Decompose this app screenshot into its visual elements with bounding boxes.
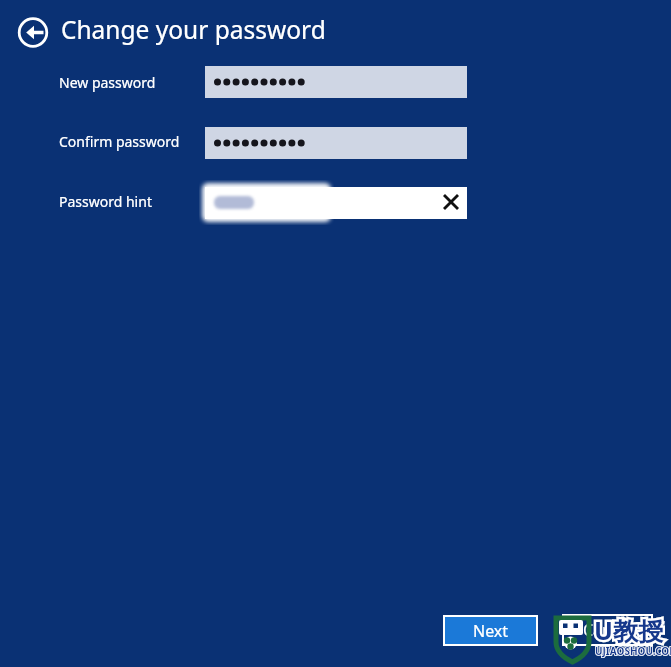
button[interactable] [205,127,467,159]
button[interactable] [205,187,467,219]
staticText: Cancel [583,619,633,641]
button[interactable]: Cancel [562,614,653,646]
button[interactable] [17,16,50,49]
staticText: Password hint [59,192,152,211]
staticText: Change your password [61,13,326,46]
staticText: Confirm password [59,132,180,151]
button[interactable]: Next [443,615,538,646]
staticText: Next [473,620,509,642]
staticText: UJIAOSHOU.COM [595,644,671,658]
staticText: UJIAOSHOU.COM [595,644,671,658]
staticText: New password [59,73,156,92]
staticText: U教授 [594,613,663,647]
staticText: U教授 [594,613,663,647]
button[interactable] [205,66,467,98]
